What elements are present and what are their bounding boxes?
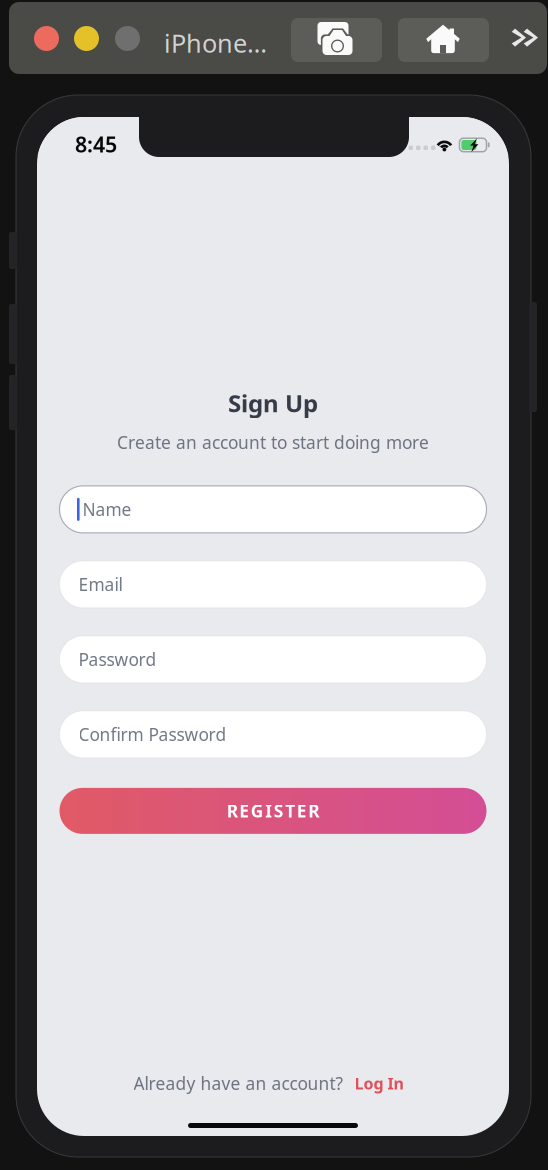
staticText: Sign Up [228, 387, 318, 419]
button[interactable]: Confirm Password [59, 711, 486, 758]
button[interactable]: Minimize [74, 26, 99, 51]
button[interactable]: REGISTER [59, 788, 486, 834]
button[interactable]: Zoom [115, 26, 140, 51]
button[interactable]: Screenshot [291, 18, 382, 62]
button[interactable]: Password [59, 636, 486, 683]
staticText: Password [78, 648, 156, 671]
button[interactable]: More toolbar items [506, 25, 540, 55]
button[interactable]: Email [59, 561, 486, 608]
staticText: iPhone… [164, 26, 267, 60]
staticText: Confirm Password [78, 723, 226, 746]
button[interactable]: Name [59, 486, 486, 533]
staticText: Name [83, 498, 132, 521]
staticText: Already have an account? [133, 1072, 343, 1095]
staticText: 8:45 [75, 130, 117, 158]
button[interactable]: Log In [343, 1070, 408, 1097]
staticText: Email [78, 573, 122, 596]
staticText: REGISTER [227, 799, 319, 822]
button[interactable]: Close [34, 26, 59, 51]
staticText: Log In [354, 1073, 403, 1094]
button[interactable]: Home [398, 18, 489, 62]
staticText: Create an account to start doing more [117, 431, 429, 454]
